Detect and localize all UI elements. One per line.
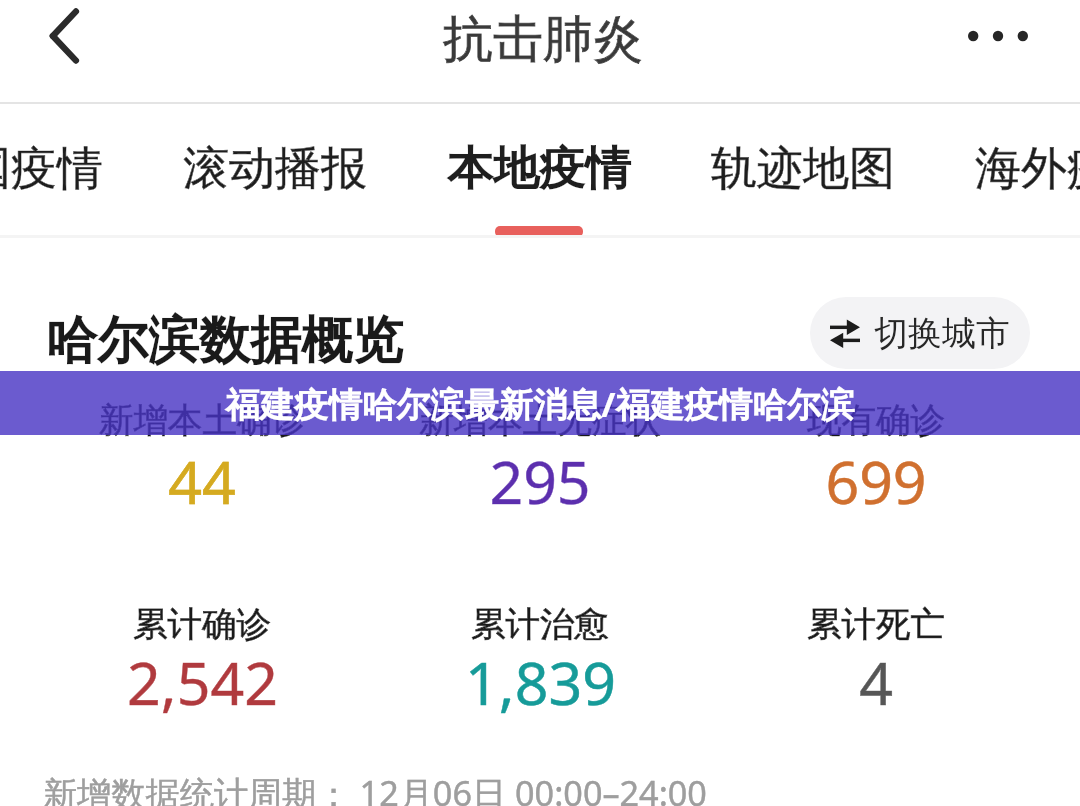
staticText: 2,542 — [127, 642, 278, 722]
staticText: 抗击肺炎 — [443, 8, 643, 71]
staticText: 新增数据统计周期： 12月06日 00:00–24:00 — [43, 769, 707, 806]
staticText: 滚动播报 — [183, 140, 367, 198]
button[interactable]: 全国疫情 — [0, 104, 131, 234]
staticText: 现有确诊 — [807, 399, 945, 442]
staticText: 累计死亡 — [807, 603, 945, 646]
staticText: 海外疫情 — [975, 140, 1080, 198]
button[interactable]: 本地疫情 — [419, 104, 659, 234]
staticText: 福建疫情哈尔滨最新消息/福建疫情哈尔滨 — [225, 380, 855, 427]
staticText: 新增本土确诊 — [99, 399, 306, 442]
button[interactable]: Back — [17, 6, 111, 66]
staticText: 4 — [859, 642, 893, 722]
staticText: 现有确诊 — [807, 399, 945, 442]
staticText: 累计确诊 — [133, 603, 271, 646]
staticText: 44 — [168, 441, 236, 521]
staticText: 4 — [859, 642, 893, 722]
staticText: 1,839 — [465, 642, 616, 722]
button[interactable]: 海外疫情 — [947, 104, 1080, 234]
button[interactable]: 切换城市 — [810, 297, 1030, 369]
button[interactable]: 滚动播报 — [155, 104, 395, 234]
staticText: 2,542 — [127, 642, 278, 722]
staticText: 新增数据统计周期： 12月06日 00:00–24:00 — [43, 769, 707, 806]
staticText: 哈尔滨数据概览 — [46, 309, 403, 373]
staticText: 新增本土无症状 — [419, 399, 661, 442]
staticText: 轨迹地图 — [711, 140, 895, 198]
staticText: 295 — [489, 441, 591, 521]
staticText: 全国疫情 — [0, 140, 103, 198]
staticText: 295 — [489, 441, 591, 521]
button[interactable]: 轨迹地图 — [683, 104, 923, 234]
staticText: 累计死亡 — [807, 603, 945, 646]
button[interactable]: More options — [928, 0, 1068, 72]
staticText: 新增本土无症状 — [419, 399, 661, 442]
staticText: 累计治愈 — [471, 603, 609, 646]
staticText: 新增本土确诊 — [99, 399, 306, 442]
staticText: 全国疫情 — [0, 140, 103, 198]
staticText: 本地疫情 — [447, 140, 631, 198]
button[interactable]: 福建疫情哈尔滨最新消息/福建疫情哈尔滨 — [0, 371, 1080, 435]
staticText: 切换城市 — [874, 312, 1010, 355]
staticText: 海外疫情 — [975, 140, 1080, 198]
staticText: 轨迹地图 — [711, 140, 895, 198]
staticText: 699 — [825, 441, 927, 521]
staticText: 滚动播报 — [183, 140, 367, 198]
staticText: 1,839 — [465, 642, 616, 722]
staticText: 44 — [168, 441, 236, 521]
staticText: 累计确诊 — [133, 603, 271, 646]
staticText: 累计治愈 — [471, 603, 609, 646]
staticText: 抗击肺炎 — [443, 8, 643, 71]
staticText: 699 — [825, 441, 927, 521]
